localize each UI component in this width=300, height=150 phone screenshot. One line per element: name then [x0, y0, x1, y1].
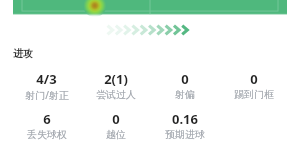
staticText: 射偏	[175, 88, 195, 101]
staticText: 进攻	[13, 47, 33, 60]
button[interactable]: 0	[150, 70, 219, 101]
button[interactable]: 0	[81, 110, 150, 141]
staticText: 丢失球权	[27, 128, 67, 141]
button[interactable]: 2(1)	[81, 70, 150, 101]
button[interactable]: 4/3	[12, 70, 81, 102]
staticText: 0	[112, 110, 120, 128]
staticText: 2(1)	[104, 70, 128, 88]
staticText: 0	[250, 70, 258, 88]
button[interactable]: 0	[219, 70, 288, 101]
staticText: 踢到门框	[234, 88, 274, 101]
button[interactable]: 6	[12, 110, 81, 141]
staticText: 4/3	[36, 70, 57, 88]
button[interactable]: 0.16	[150, 110, 219, 141]
staticText: 越位	[106, 128, 126, 141]
staticText: 6	[43, 110, 51, 128]
staticText: 预期进球	[165, 128, 205, 141]
staticText: 射门/射正	[25, 88, 69, 102]
staticText: 尝试过人	[96, 88, 136, 101]
staticText: 0	[181, 70, 189, 88]
staticText: 0.16	[172, 110, 198, 128]
